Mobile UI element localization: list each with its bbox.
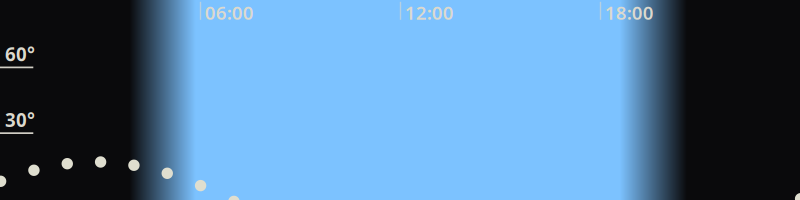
staticText: 18:00 [605, 0, 654, 25]
staticText: 60° [5, 41, 35, 66]
staticText: 12:00 [405, 0, 454, 25]
staticText: 06:00 [205, 0, 254, 25]
staticText: 30° [5, 107, 35, 132]
